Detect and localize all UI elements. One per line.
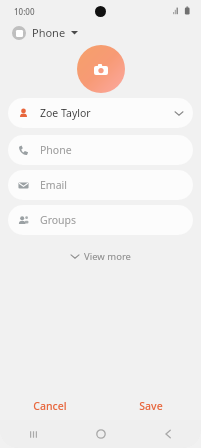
- button[interactable]: Email: [8, 170, 193, 200]
- staticText: View more: [84, 250, 131, 263]
- button[interactable]: Groups: [8, 205, 193, 235]
- button[interactable]: Back: [134, 420, 201, 448]
- button[interactable]: Recent apps: [0, 420, 67, 448]
- button[interactable]: View more: [63, 247, 139, 266]
- staticText: 10:00: [14, 6, 35, 17]
- staticText: Email: [40, 178, 183, 192]
- staticText: Phone: [32, 25, 66, 40]
- button[interactable]: Save: [100, 392, 201, 420]
- staticText: Groups: [40, 213, 183, 227]
- staticText: Save: [139, 399, 163, 413]
- button[interactable]: Cancel: [0, 392, 100, 420]
- button[interactable]: Phone: [8, 135, 193, 165]
- button[interactable]: Home: [67, 420, 134, 448]
- button[interactable]: Zoe Taylor: [8, 98, 193, 128]
- staticText: Zoe Taylor: [40, 106, 175, 120]
- button[interactable]: Change photo: [77, 45, 125, 93]
- staticText: Cancel: [33, 399, 67, 413]
- button[interactable]: Phone: [10, 24, 80, 41]
- staticText: Phone: [40, 143, 183, 157]
